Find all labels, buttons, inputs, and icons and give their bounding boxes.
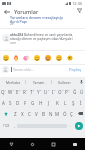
button[interactable]: T <box>29 86 36 97</box>
staticText: 4 <box>26 88 28 91</box>
button[interactable]: I <box>50 86 57 97</box>
staticText: B <box>42 111 45 117</box>
staticText: Bahsedilmesi ve canlı yayınlarda, <box>24 33 74 37</box>
button[interactable]: N <box>47 108 54 119</box>
button[interactable]: C <box>26 108 33 119</box>
staticText: 5 <box>33 88 35 91</box>
button[interactable]: Ç <box>68 108 75 119</box>
button[interactable]: Profile photo <box>2 34 10 42</box>
staticText: olacağı dönem ve paylaşım sikar/dünyalır… <box>10 37 73 41</box>
button[interactable]: Filter <box>74 5 84 15</box>
staticText: N <box>49 111 53 117</box>
staticText: X <box>21 111 24 117</box>
staticText: Ç <box>70 111 73 117</box>
button[interactable]: Kullanın <box>52 77 77 86</box>
staticText: C <box>28 111 31 117</box>
staticText: Ş <box>72 100 75 106</box>
button[interactable]: P <box>64 86 71 97</box>
button[interactable]: Q <box>0 86 8 97</box>
button[interactable]: L <box>61 97 69 108</box>
button[interactable]: Comma <box>12 119 17 132</box>
button[interactable]: cem <box>10 41 17 45</box>
button[interactable]: Home <box>22 138 43 150</box>
button[interactable]: Merhaba <box>0 77 25 86</box>
button[interactable]: Ğ <box>71 86 78 97</box>
button[interactable]: Voice input <box>77 77 85 86</box>
button[interactable]: Ş <box>69 97 77 108</box>
staticText: İ <box>80 100 82 106</box>
button[interactable]: Z <box>11 108 19 119</box>
staticText: 8 <box>54 88 56 91</box>
button[interactable]: Ö <box>61 108 68 119</box>
staticText: D <box>16 100 20 106</box>
staticText: 6 <box>40 88 42 91</box>
button[interactable]: E <box>15 86 22 97</box>
staticText: Yorumlara devamı mesajlaştığı <box>10 15 63 20</box>
staticText: T <box>30 89 33 95</box>
button[interactable]: Reaction <box>11 52 21 63</box>
button[interactable]: K <box>53 97 61 108</box>
staticText: I <box>52 89 54 95</box>
staticText: E <box>16 89 19 95</box>
button[interactable]: V <box>33 108 40 119</box>
button[interactable]: X <box>19 108 26 119</box>
staticText: Ü <box>80 89 84 95</box>
button[interactable]: G <box>29 97 37 108</box>
button[interactable]: U <box>43 86 50 97</box>
staticText: W <box>8 89 13 95</box>
staticText: M <box>55 111 60 117</box>
staticText: Ğ <box>73 89 77 95</box>
staticText: . <box>69 123 71 128</box>
button[interactable]: Tamam <box>26 77 51 86</box>
button[interactable]: Backspace <box>75 108 85 119</box>
button[interactable]: Yorum ekle... <box>11 65 66 74</box>
button[interactable]: Back <box>0 138 22 150</box>
button[interactable]: Reaction <box>42 52 53 63</box>
button[interactable]: Y <box>36 86 43 97</box>
staticText: , <box>14 123 16 128</box>
button[interactable]: Recent apps <box>43 138 64 150</box>
button[interactable]: R <box>22 86 29 97</box>
staticText: U <box>44 89 48 95</box>
button[interactable]: Send <box>72 119 85 132</box>
button[interactable]: Reaction <box>31 52 42 63</box>
button[interactable]: Hide keyboard <box>64 138 85 150</box>
staticText: J <box>48 100 50 106</box>
button[interactable]: B <box>40 108 47 119</box>
button[interactable]: A <box>0 97 7 108</box>
staticText: Z <box>14 111 17 117</box>
button[interactable]: Ü <box>78 86 85 97</box>
staticText: 2s <box>10 22 14 26</box>
button[interactable]: İ <box>77 97 85 108</box>
staticText: 12:06 <box>72 1 83 6</box>
button[interactable]: Reaction <box>21 52 31 63</box>
button[interactable]: W <box>8 86 15 97</box>
button[interactable]: ?123 <box>0 119 12 132</box>
button[interactable]: Back <box>1 6 12 17</box>
staticText: 2 <box>13 88 15 91</box>
button[interactable]: H <box>37 97 45 108</box>
button[interactable]: D <box>14 97 21 108</box>
button[interactable]: Reaction <box>53 52 64 63</box>
button[interactable]: F <box>21 97 29 108</box>
staticText: Ö <box>63 111 67 117</box>
staticText: L <box>64 100 67 106</box>
staticText: F <box>24 100 27 106</box>
button[interactable]: Your profile photo <box>2 66 9 73</box>
staticText: O <box>58 89 62 95</box>
button[interactable]: Reaction <box>1 52 11 63</box>
button[interactable]: Paylaş <box>68 65 83 74</box>
button[interactable]: Reaction <box>64 52 75 63</box>
staticText: 0 <box>68 88 70 91</box>
button[interactable]: J <box>45 97 53 108</box>
button[interactable]: M <box>54 108 61 119</box>
staticText: Yorum ekle... <box>13 67 34 72</box>
button[interactable]: O <box>57 86 64 97</box>
staticText: 9 <box>62 88 64 91</box>
staticText: 7 <box>48 88 50 91</box>
button[interactable]: Shift <box>0 108 11 119</box>
staticText: Merhaba <box>6 80 20 84</box>
button[interactable]: S <box>7 97 14 108</box>
